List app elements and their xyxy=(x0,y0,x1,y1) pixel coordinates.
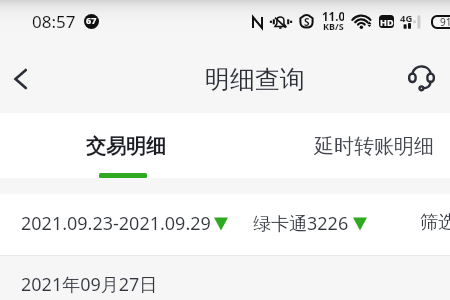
button[interactable]: 延时转账明细 xyxy=(290,113,450,178)
staticText: 67 xyxy=(86,14,97,26)
button[interactable]: 交易明细 xyxy=(61,113,189,178)
staticText: KB/S xyxy=(323,20,344,32)
button[interactable]: 绿卡通3226 xyxy=(253,211,367,236)
staticText: 筛选 xyxy=(420,211,450,234)
staticText: S xyxy=(304,15,310,29)
staticText: 11.0 xyxy=(322,9,344,25)
staticText: HD xyxy=(380,16,394,28)
button[interactable]: Back xyxy=(1,59,41,99)
staticText: 4G xyxy=(400,12,413,25)
staticText: 交易明细 xyxy=(86,134,166,159)
staticText: 2021年09月27日 xyxy=(21,272,158,297)
staticText: 绿卡通3226 xyxy=(253,211,349,236)
button[interactable]: 筛选 xyxy=(420,211,450,234)
button[interactable]: Customer service xyxy=(402,59,440,97)
staticText: 91 xyxy=(440,15,450,29)
staticText: 08:57 xyxy=(32,10,76,33)
button[interactable]: 2021.09.23-2021.09.29 xyxy=(21,211,228,236)
staticText: 延时转账明细 xyxy=(314,134,434,159)
staticText: 2021.09.23-2021.09.29 xyxy=(21,211,211,236)
staticText: 明细查询 xyxy=(205,64,305,95)
